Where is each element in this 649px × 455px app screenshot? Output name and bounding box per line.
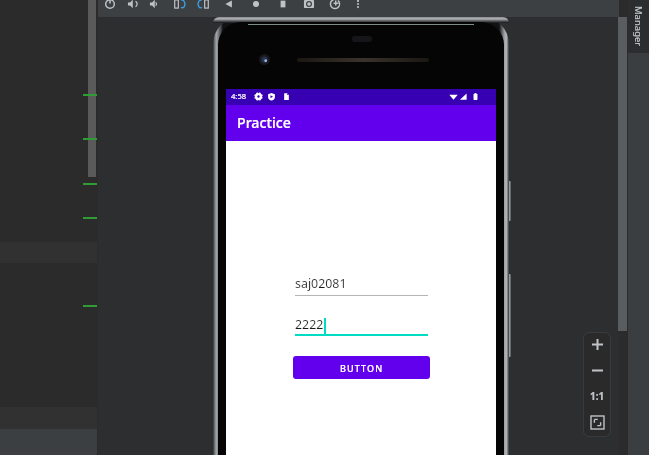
staticText: Practice bbox=[237, 113, 291, 132]
button[interactable]: Volume up bbox=[124, 0, 142, 17]
button[interactable]: Overview bbox=[274, 0, 292, 17]
button[interactable]: Volume down bbox=[146, 0, 164, 17]
button[interactable]: 2222 bbox=[295, 316, 428, 336]
button[interactable]: Record screen bbox=[326, 0, 344, 17]
button[interactable]: saj02081 bbox=[295, 275, 428, 296]
button[interactable]: Zoom in bbox=[583, 332, 611, 357]
button[interactable]: More bbox=[349, 0, 367, 17]
staticText: 4:58 bbox=[231, 91, 247, 101]
button[interactable]: Fit to screen bbox=[583, 410, 611, 435]
button[interactable]: BUTTON bbox=[293, 356, 430, 379]
button[interactable]: Home bbox=[247, 0, 265, 17]
button[interactable]: 1:1 bbox=[583, 383, 611, 408]
staticText: 2222 bbox=[295, 316, 324, 333]
staticText: saj02081 bbox=[295, 275, 347, 292]
button[interactable]: Rotate left bbox=[171, 0, 189, 17]
staticText: BUTTON bbox=[340, 362, 384, 374]
button[interactable] bbox=[628, 0, 649, 53]
staticText: 1:1 bbox=[590, 389, 605, 403]
button[interactable]: Back bbox=[220, 0, 238, 17]
button[interactable]: Screenshot bbox=[300, 0, 318, 17]
button[interactable]: Zoom out bbox=[583, 358, 611, 383]
button[interactable]: Power bbox=[101, 0, 119, 17]
button[interactable]: Rotate right bbox=[194, 0, 212, 17]
